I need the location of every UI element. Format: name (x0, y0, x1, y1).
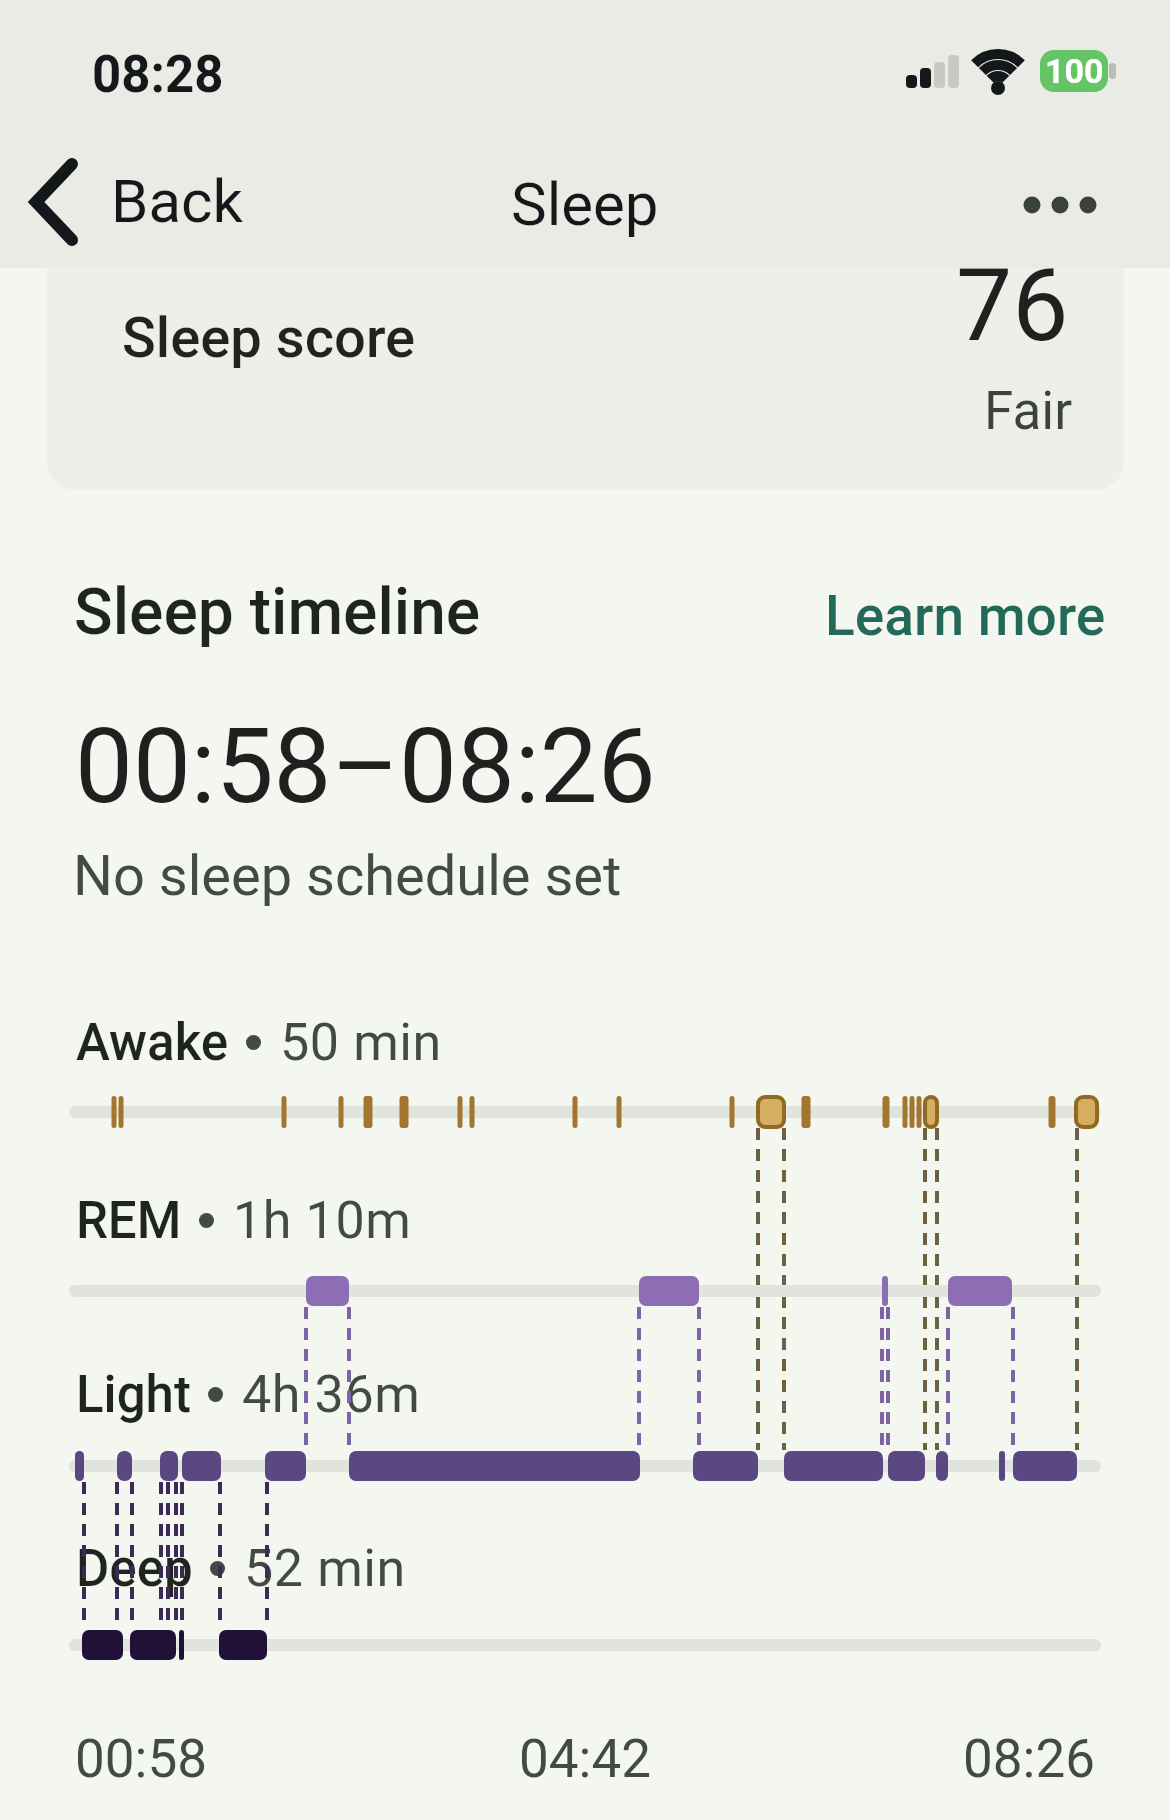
staticText: 52 min (244, 1538, 406, 1599)
staticText: 08:26 (963, 1728, 1095, 1790)
button[interactable] (1023, 196, 1097, 214)
staticText: 50 min (280, 1012, 442, 1073)
staticText: Awake (76, 1013, 229, 1073)
staticText: REM (76, 1191, 182, 1251)
staticText: 00:58 (75, 1728, 207, 1790)
button[interactable] (16, 150, 266, 254)
staticText: Fair (984, 380, 1073, 442)
staticText: Light (76, 1365, 191, 1425)
staticText: Learn more (825, 584, 1106, 648)
staticText: 04:42 (519, 1728, 651, 1790)
staticText: Back (111, 166, 243, 236)
staticText: 08:28 (92, 45, 224, 105)
staticText: 1h 10m (233, 1190, 412, 1251)
staticText: No sleep schedule set (73, 843, 622, 909)
staticText: 00:58–08:26 (75, 706, 656, 827)
button[interactable]: Learn more (810, 575, 1110, 645)
staticText: 4h 36m (242, 1364, 421, 1425)
staticText: Sleep (511, 169, 659, 239)
staticText: Sleep score (122, 305, 416, 371)
staticText: Sleep timeline (74, 575, 481, 650)
staticText: Deep (76, 1539, 193, 1599)
button[interactable] (47, 218, 1124, 490)
staticText: 100 (1045, 51, 1104, 91)
staticText: 76 (956, 247, 1069, 364)
